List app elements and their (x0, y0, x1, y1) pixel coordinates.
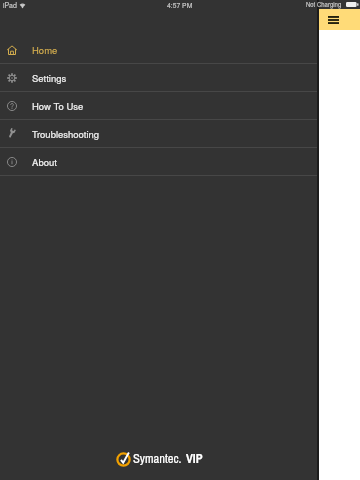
button[interactable]: Settings (0, 64, 317, 91)
button[interactable]: About (0, 148, 317, 175)
staticText: VIP (186, 450, 203, 467)
staticText: Troubleshooting (32, 127, 100, 141)
staticText: About (32, 155, 57, 169)
button[interactable]: Open navigation menu (325, 11, 341, 29)
staticText: iPad (3, 0, 17, 9)
staticText: Home (32, 43, 58, 57)
staticText: Symantec. (133, 450, 182, 467)
staticText: How To Use (32, 99, 84, 113)
button[interactable]: Home (0, 36, 317, 63)
button[interactable]: How To Use (0, 92, 317, 119)
staticText: Not Charging (306, 0, 342, 9)
staticText: Settings (32, 71, 67, 85)
staticText: 4:57 PM (167, 0, 193, 9)
button[interactable]: Troubleshooting (0, 120, 317, 147)
